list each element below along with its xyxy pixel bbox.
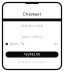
staticText: Edit — [53, 42, 58, 46]
staticText: Total due today — [21, 24, 42, 28]
staticText: Terms and conditions — [17, 60, 46, 64]
staticText: Apple Pay — [10, 42, 24, 46]
staticText: Payment method — [20, 35, 43, 39]
button[interactable]: Apple Pay — [2, 41, 61, 46]
staticText: Pay $42.00 — [23, 53, 40, 56]
staticText: Checkout — [22, 11, 41, 17]
button[interactable]: Pay $42.00 — [2, 51, 61, 57]
